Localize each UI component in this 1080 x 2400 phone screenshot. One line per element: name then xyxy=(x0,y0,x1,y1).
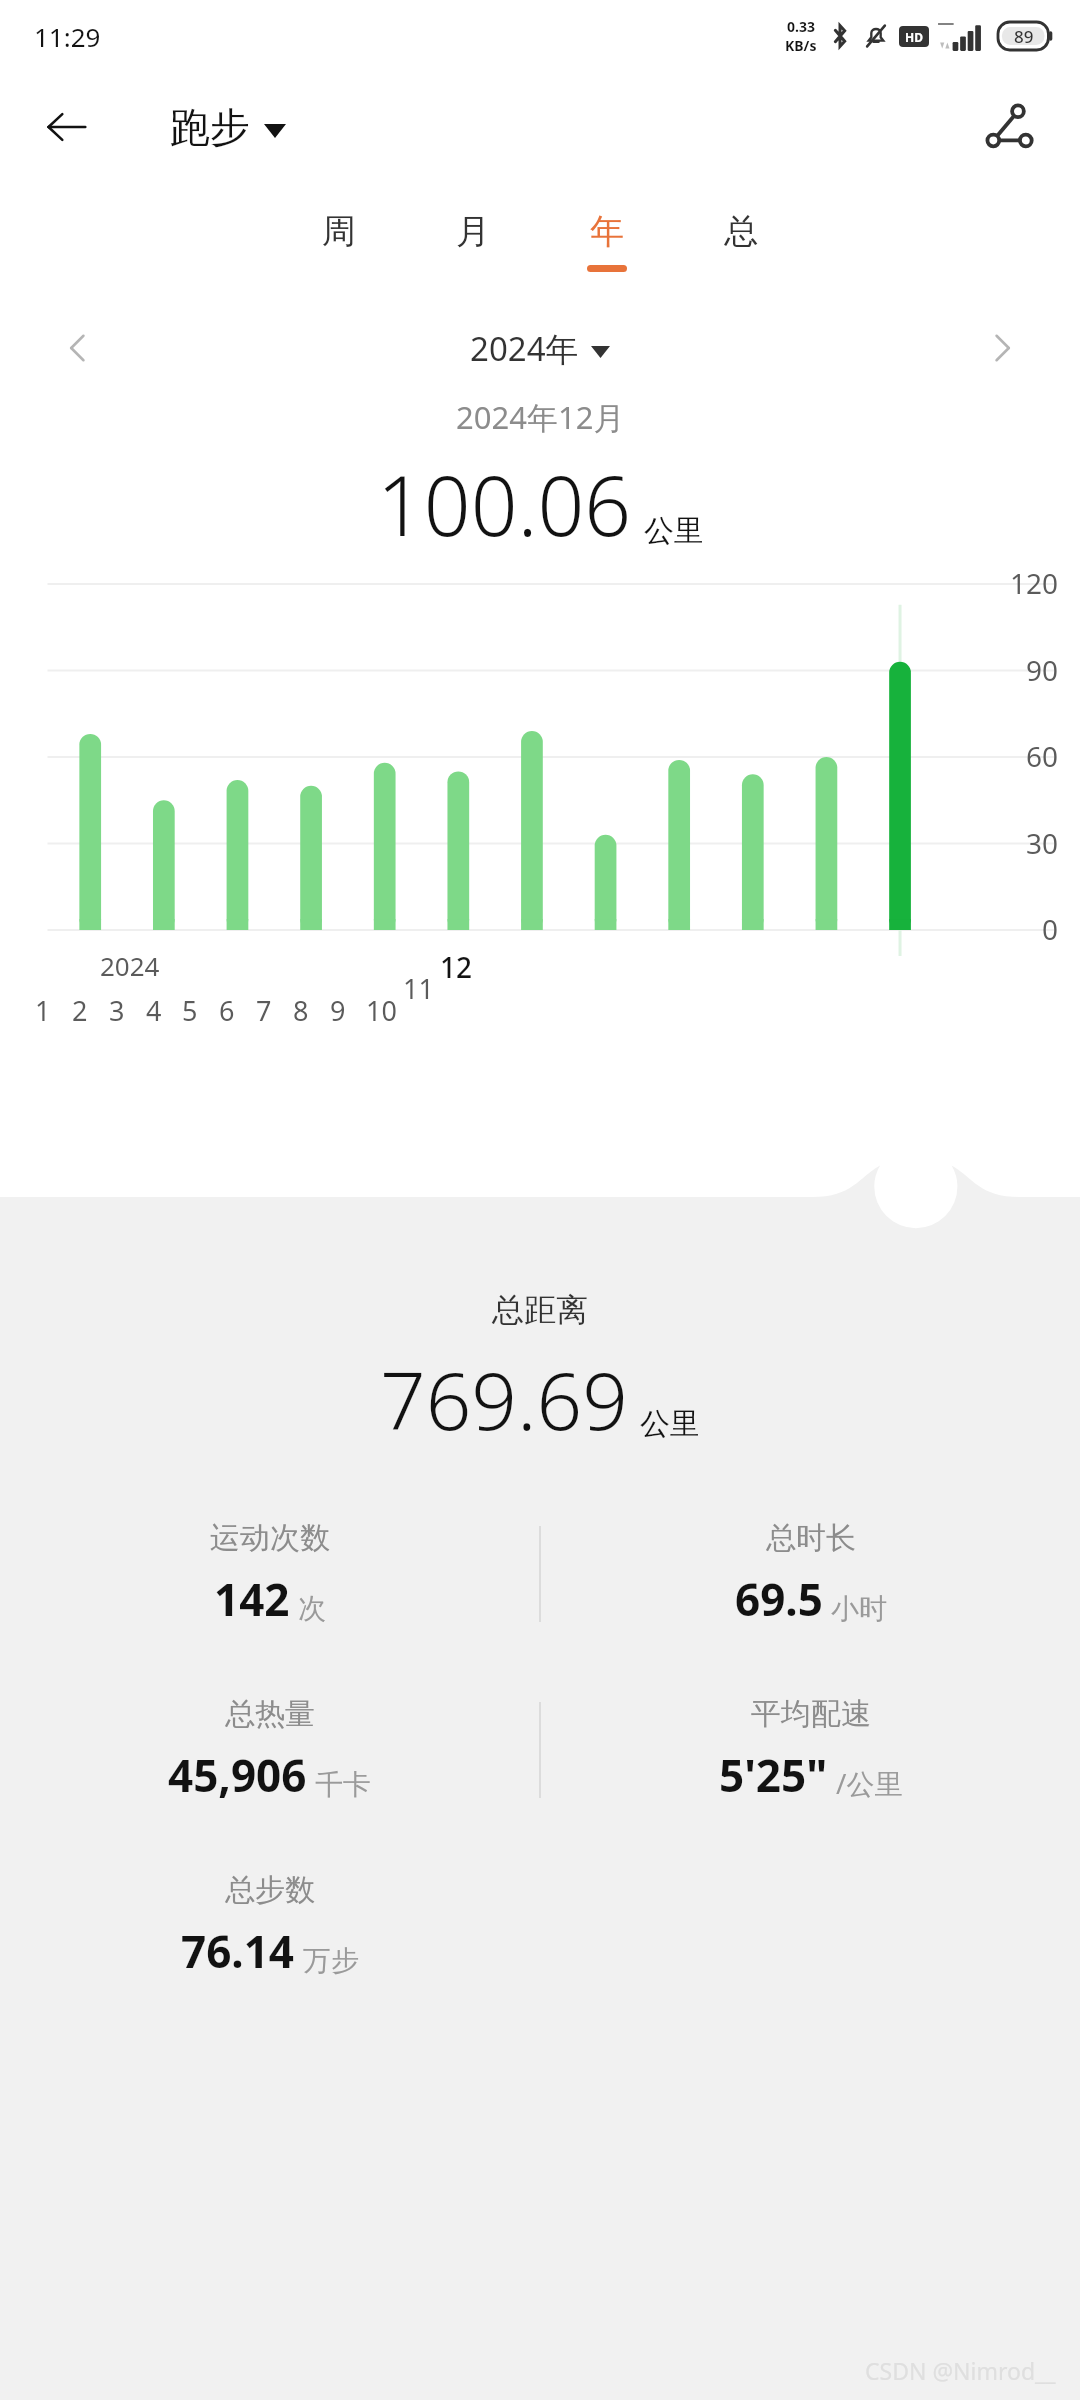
button[interactable]: 运动次数 xyxy=(0,1519,539,1629)
staticText: 769.69 xyxy=(380,1344,628,1453)
staticText: 12 xyxy=(440,948,473,986)
staticText: 2024年12月 xyxy=(456,396,625,438)
staticText: KB/s xyxy=(785,36,817,55)
staticText: 1 xyxy=(35,992,51,1029)
button[interactable]: 平均配速 xyxy=(541,1695,1080,1805)
staticText: /公里 xyxy=(836,1764,903,1802)
staticText: 跑步 xyxy=(170,102,250,152)
button[interactable]: Share xyxy=(972,90,1046,164)
staticText: 2024年 xyxy=(470,326,579,371)
button[interactable]: 总步数 xyxy=(0,1871,539,1981)
staticText: CSDN @Nimrod__ xyxy=(865,2355,1056,2386)
staticText: 千卡 xyxy=(315,1767,371,1802)
staticText: 45,906 xyxy=(168,1745,307,1805)
staticText: 11:29 xyxy=(34,19,101,54)
staticText: 万步 xyxy=(303,1943,359,1978)
button[interactable]: 总时长 xyxy=(541,1519,1080,1629)
staticText: 总距离 xyxy=(492,1290,588,1330)
button[interactable]: 总 xyxy=(674,182,808,300)
staticText: 公里 xyxy=(640,1405,700,1443)
staticText: 8 xyxy=(293,992,309,1029)
staticText: 9 xyxy=(330,992,346,1029)
button[interactable]: 跑步 xyxy=(170,102,286,152)
button[interactable]: 年 xyxy=(540,182,674,300)
button[interactable]: Previous year xyxy=(46,316,110,380)
staticText: 平均配速 xyxy=(751,1695,871,1733)
staticText: 2024 xyxy=(100,948,160,983)
button[interactable]: Next year xyxy=(970,316,1034,380)
staticText: 69.5 xyxy=(735,1569,823,1629)
staticText: 月 xyxy=(456,210,490,253)
staticText: 7 xyxy=(256,992,272,1029)
staticText: 120 xyxy=(1009,564,1058,602)
staticText: 小时 xyxy=(831,1591,887,1626)
staticText: 6 xyxy=(219,992,235,1029)
staticText: 30 xyxy=(1025,824,1058,862)
button[interactable]: 周 xyxy=(272,182,406,300)
button[interactable]: Back xyxy=(34,95,98,159)
staticText: 运动次数 xyxy=(210,1519,330,1557)
staticText: HD xyxy=(905,29,923,45)
staticText: 总时长 xyxy=(766,1519,856,1557)
staticText: 公里 xyxy=(644,512,704,550)
staticText: 10 xyxy=(366,992,397,1029)
staticText: 142 xyxy=(214,1569,290,1629)
button[interactable]: 2024年 xyxy=(470,326,610,371)
staticText: 3 xyxy=(109,992,125,1029)
staticText: 次 xyxy=(298,1591,326,1626)
staticText: 年 xyxy=(590,210,624,253)
button[interactable]: 总热量 xyxy=(0,1695,539,1805)
staticText: 100.06 xyxy=(377,448,632,560)
staticText: 5'25" xyxy=(719,1745,828,1805)
staticText: 总 xyxy=(724,210,758,253)
staticText: 总步数 xyxy=(225,1871,315,1909)
staticText: 周 xyxy=(322,210,356,253)
staticText: 11 xyxy=(403,970,434,1007)
staticText: 90 xyxy=(1025,651,1058,689)
button[interactable]: 月 xyxy=(406,182,540,300)
staticText: 4 xyxy=(146,992,162,1029)
staticText: 0.33 xyxy=(787,17,815,36)
staticText: 2 xyxy=(72,992,88,1029)
staticText: 0 xyxy=(1041,910,1058,948)
staticText: 60 xyxy=(1025,737,1058,775)
staticText: 89 xyxy=(1014,25,1034,48)
staticText: 76.14 xyxy=(181,1921,295,1981)
staticText: 总热量 xyxy=(225,1695,315,1733)
staticText: 5 xyxy=(182,992,198,1029)
